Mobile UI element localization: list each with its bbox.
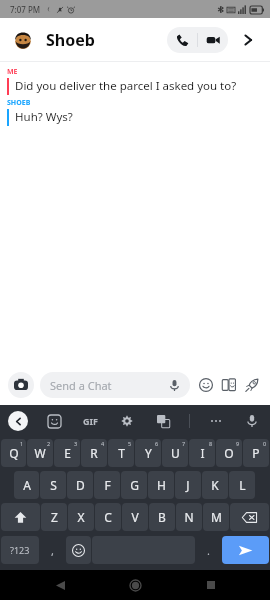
staticText: 2 (47, 440, 51, 447)
button[interactable]: V (122, 503, 148, 531)
button[interactable]: W (27, 439, 53, 467)
staticText: E (64, 445, 71, 461)
button[interactable]: Settings (117, 411, 137, 431)
button[interactable]: S (40, 471, 66, 499)
staticText: 9 (236, 440, 240, 447)
button[interactable]: Z (41, 503, 67, 531)
button[interactable]: L (229, 471, 255, 499)
button[interactable]: ?123 (1, 536, 39, 564)
staticText: K (211, 477, 219, 493)
button[interactable]: GIF (80, 415, 101, 427)
button[interactable]: Shift (1, 503, 40, 531)
button[interactable]: Y (135, 439, 161, 467)
staticText: Send a Chat (50, 378, 112, 393)
staticText: 1 (20, 440, 24, 447)
button[interactable]: Stickers (44, 411, 64, 431)
staticText: Huh? Wys? (15, 109, 73, 125)
staticText: Z (51, 509, 58, 525)
button[interactable]: J (175, 471, 201, 499)
staticText: W (34, 445, 46, 461)
button[interactable]: N (176, 503, 202, 531)
staticText: 4 (101, 440, 105, 447)
staticText: SHOEB (7, 98, 31, 108)
button[interactable]: Back (44, 570, 76, 600)
staticText: 8 (209, 440, 213, 447)
button[interactable]: E (54, 439, 80, 467)
button[interactable]: . (196, 536, 221, 564)
staticText: M (211, 509, 222, 525)
staticText: ME (7, 67, 18, 77)
button[interactable]: Emoji (66, 536, 91, 564)
staticText: Y (145, 445, 152, 461)
staticText: H (157, 477, 166, 493)
button[interactable]: Home (119, 570, 151, 600)
button[interactable]: Bitmoji (219, 375, 239, 395)
button[interactable]: Backspace (230, 503, 269, 531)
button[interactable]: , (40, 536, 65, 564)
button[interactable]: Translate (153, 411, 173, 431)
button[interactable]: G (121, 471, 147, 499)
button[interactable]: M (203, 503, 229, 531)
staticText: C (104, 509, 112, 525)
button[interactable]: U (162, 439, 188, 467)
other: Voice (169, 380, 180, 391)
staticText: 6 (155, 440, 159, 447)
button[interactable]: Voice input (242, 411, 262, 431)
staticText: 0 (263, 440, 267, 447)
staticText: GIF (83, 415, 98, 427)
staticText: 3 (74, 440, 78, 447)
button[interactable]: Rocket (242, 375, 262, 395)
staticText: O (224, 445, 234, 461)
button[interactable]: Call (167, 27, 197, 53)
button[interactable]: Stickers (196, 375, 216, 395)
button[interactable]: Recents (195, 570, 227, 600)
button[interactable]: Next (236, 28, 260, 52)
staticText: B (158, 509, 166, 525)
staticText: . (207, 543, 210, 558)
button[interactable]: X (68, 503, 94, 531)
staticText: Shoeb (46, 29, 95, 51)
staticText: V (131, 509, 139, 525)
staticText: 7 (182, 440, 186, 447)
button[interactable]: P (243, 439, 269, 467)
staticText: T (118, 445, 125, 461)
staticText: F (104, 477, 111, 493)
staticText: A (23, 477, 31, 493)
staticText: L (239, 477, 246, 493)
staticText: X (77, 509, 85, 525)
staticText: N (184, 509, 194, 525)
button[interactable]: A (14, 471, 39, 499)
staticText: J (186, 477, 190, 493)
staticText: D (76, 477, 85, 493)
staticText: 7:07 PM (10, 4, 41, 15)
staticText: 5 (128, 440, 132, 447)
button[interactable]: Back (8, 411, 28, 431)
staticText: Did you deliver the parcel I asked you t… (15, 78, 237, 94)
staticText: U (171, 445, 180, 461)
button[interactable]: K (202, 471, 228, 499)
staticText: S (50, 477, 57, 493)
staticText: I (200, 445, 205, 461)
button[interactable]: Camera (8, 372, 34, 398)
staticText: R (90, 445, 98, 461)
button[interactable]: D (67, 471, 93, 499)
button[interactable]: Q (1, 439, 26, 467)
button[interactable]: H (148, 471, 174, 499)
button[interactable]: B (149, 503, 175, 531)
button[interactable]: O (216, 439, 242, 467)
staticText: G (130, 477, 139, 493)
button[interactable]: Send (222, 536, 269, 564)
button[interactable]: R (81, 439, 107, 467)
button[interactable]: Send a Chat (40, 372, 190, 398)
staticText: Q (9, 445, 19, 461)
staticText: , (51, 543, 54, 558)
button[interactable]: C (95, 503, 121, 531)
button[interactable]: Video call (198, 27, 228, 53)
button[interactable]: Profile avatar (10, 27, 36, 53)
button[interactable]: F (94, 471, 120, 499)
button[interactable]: More (206, 411, 226, 431)
staticText: ?123 (10, 544, 30, 556)
button[interactable]: T (108, 439, 134, 467)
button[interactable]: I (189, 439, 215, 467)
